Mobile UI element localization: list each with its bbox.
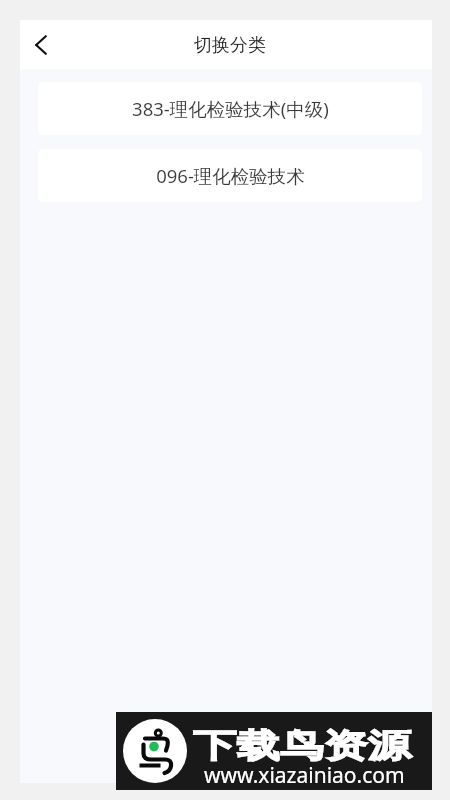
staticText: 383-理化检验技术(中级) <box>132 96 329 121</box>
staticText: 096-理化检验技术 <box>156 163 305 188</box>
staticText: 下载鸟资源 <box>193 725 411 766</box>
button[interactable]: 383-理化检验技术(中级) <box>38 82 422 135</box>
staticText: 切换分类 <box>194 34 266 57</box>
staticText: www.xiazainiao.com <box>204 761 405 790</box>
button[interactable]: Back <box>20 22 66 68</box>
button[interactable]: 096-理化检验技术 <box>38 149 422 202</box>
